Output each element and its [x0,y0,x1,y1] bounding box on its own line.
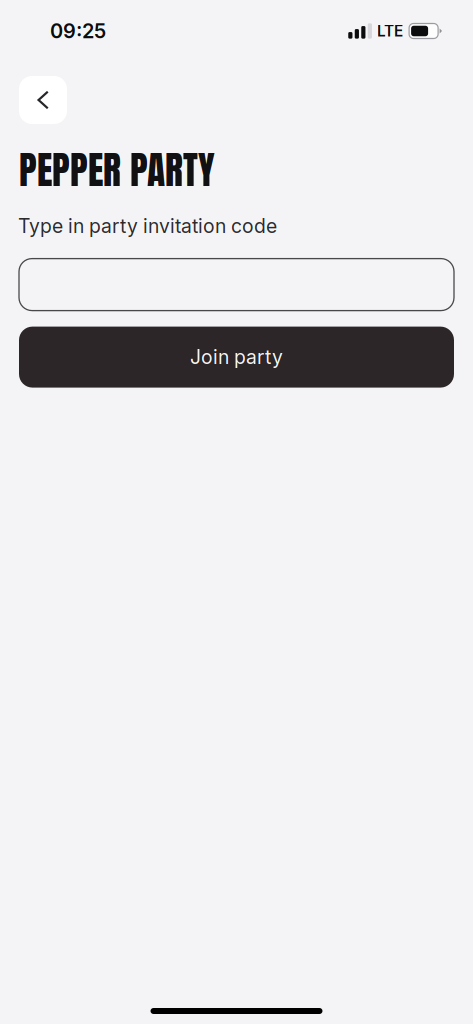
staticText: LTE [377,22,403,40]
staticText: Join party [190,345,283,369]
button[interactable]: Back [19,76,67,124]
button[interactable]: Join party [19,327,454,388]
staticText: PEPPER PARTY [19,142,215,198]
button[interactable]: Party invitation code [19,259,454,311]
staticText: 09:25 [50,19,106,43]
staticText: Type in party invitation code [18,214,277,238]
